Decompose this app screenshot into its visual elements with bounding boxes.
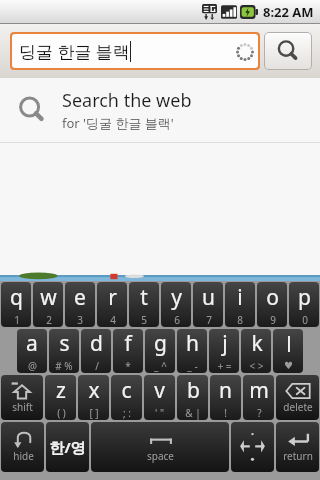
staticText: hide [13,449,34,463]
staticText: n [219,376,232,405]
staticText: b [187,376,200,405]
staticText: g [154,329,167,358]
staticText: < > [249,359,264,373]
button[interactable]: delete [276,375,319,420]
staticText: 7 [206,313,212,327]
staticText: v [154,376,165,405]
button[interactable]: g [145,329,175,373]
staticText: 8 [237,313,243,327]
staticText: 5 [141,313,147,327]
button[interactable]: Search [264,32,312,70]
button[interactable]: u [193,282,223,327]
button[interactable]: w [33,282,63,327]
staticText: ! [224,406,227,420]
staticText: 4 [110,313,116,327]
staticText: f [124,329,132,358]
staticText: 6 [174,313,180,327]
staticText: ; : [123,406,131,420]
staticText: & | [185,406,201,420]
button[interactable]: z [45,375,76,420]
staticText: x [88,376,100,405]
staticText: z [56,376,66,405]
staticText: 딩굴 한글 블랙 [19,40,130,63]
staticText: s [59,329,70,358]
staticText: h [186,329,199,358]
button[interactable]: space [91,422,229,472]
button[interactable]: s [49,329,79,373]
staticText: m [249,376,269,405]
staticText: p [298,283,311,312]
button[interactable]: p [289,282,319,327]
button[interactable]: h [177,329,207,373]
button[interactable]: q [1,282,31,327]
staticText: 1 [14,313,20,327]
button[interactable]: l [273,329,303,373]
staticText: ' " [155,406,164,420]
staticText: @ [28,359,37,373]
staticText: 8:22 AM [263,3,314,21]
staticText: delete [283,400,313,414]
button[interactable]: o [257,282,287,327]
staticText: return [283,449,313,463]
staticText: 한/영 [49,437,86,457]
button[interactable]: t [129,282,159,327]
button[interactable]: b [177,375,208,420]
staticText: ♥ [284,360,293,372]
staticText: 3 [77,313,83,327]
staticText: / [95,359,99,373]
button[interactable]: y [161,282,191,327]
staticText: j [222,329,228,358]
button[interactable]: e [65,282,95,327]
staticText: k [251,329,263,358]
staticText: e [74,283,86,312]
staticText: 0 [302,313,308,327]
staticText: space [147,449,174,463]
button[interactable]: m [243,375,274,420]
staticText: o [266,283,279,312]
staticText: 9 [270,313,276,327]
button[interactable]: c [111,375,142,420]
staticText: d [90,329,103,358]
staticText: Search the web [62,88,192,113]
staticText: i [237,283,243,312]
staticText: c [121,376,132,405]
staticText: t [140,283,148,312]
button[interactable]: Cursor keys [231,422,274,472]
staticText: [ ] [89,406,99,420]
staticText: l [286,330,292,359]
button[interactable]: v [144,375,175,420]
staticText: ( ) [57,406,66,420]
button[interactable]: d [81,329,111,373]
staticText: for '딩굴 한글 블랙' [62,114,174,132]
staticText: w [40,283,57,312]
staticText: shift [12,400,33,414]
staticText: y [171,283,182,312]
button[interactable]: 딩굴 한글 블랙 [12,34,258,68]
button[interactable]: j [209,329,239,373]
staticText: ? [257,406,262,420]
staticText: _ ^ [154,359,167,373]
button[interactable]: i [225,282,255,327]
staticText: # % [55,359,73,373]
staticText: * [125,359,131,373]
button[interactable]: x [78,375,109,420]
button[interactable]: shift [1,375,43,420]
button[interactable]: f [113,329,143,373]
button[interactable]: 한/영 [46,422,89,472]
button[interactable]: Search the web [0,78,320,142]
staticText: a [26,329,38,358]
button[interactable]: a [17,329,47,373]
button[interactable]: r [97,282,127,327]
staticText: + = [217,359,232,373]
staticText: q [10,283,23,312]
staticText: 2 [46,313,52,327]
button[interactable]: hide [1,422,44,472]
button[interactable]: return [276,422,319,472]
button[interactable]: n [210,375,241,420]
staticText: r [108,283,117,312]
button[interactable]: k [241,329,271,373]
staticText: u [202,283,215,312]
staticText: _ - [187,359,198,373]
